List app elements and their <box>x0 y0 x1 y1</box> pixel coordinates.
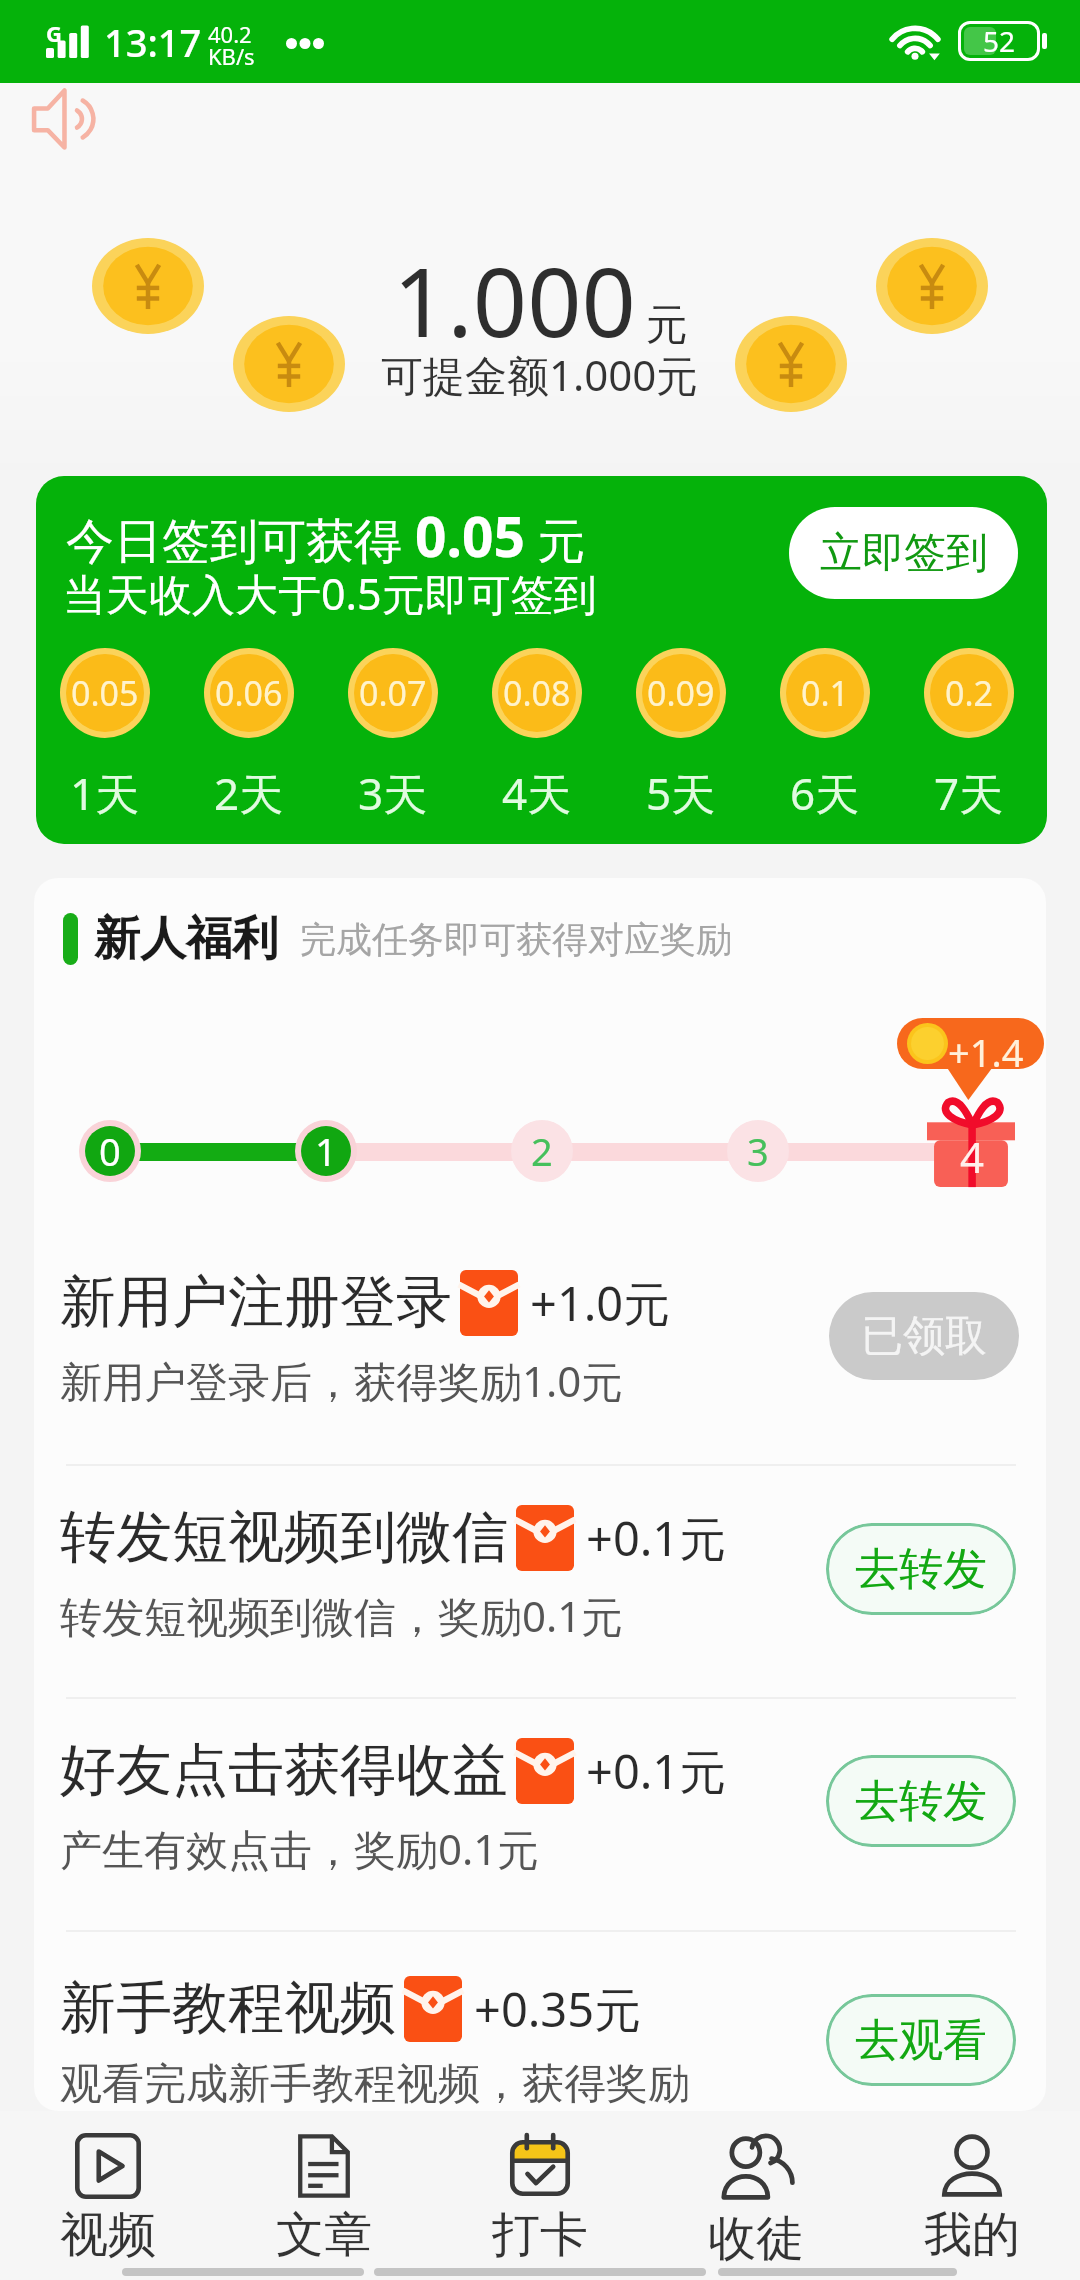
staticText: 0.06 <box>215 670 283 716</box>
button[interactable]: 文章 <box>216 2111 432 2265</box>
staticText: 已领取 <box>861 1310 987 1363</box>
staticText: 6天 <box>790 763 860 823</box>
button[interactable]: 去转发 <box>826 1523 1016 1615</box>
staticText: 转发短视频到微信，奖励0.1元 <box>60 1587 624 1644</box>
staticText: 视频 <box>60 2205 156 2265</box>
staticText: 新手教程视频 <box>60 1973 396 2044</box>
staticText: 文章 <box>276 2205 372 2265</box>
staticText: 0.08 <box>503 670 571 716</box>
staticText: 打卡 <box>492 2205 588 2265</box>
button[interactable]: 我的 <box>864 2111 1080 2265</box>
staticText: +0.1元 <box>586 1739 727 1803</box>
staticText: 0.05 <box>71 670 139 716</box>
staticText: 转发短视频到微信 <box>60 1502 508 1573</box>
staticText: 元 <box>525 507 586 573</box>
staticText: 0.09 <box>647 670 715 716</box>
staticText: 0.1 <box>801 670 850 716</box>
button[interactable]: 已领取 <box>829 1292 1019 1380</box>
staticText: 1天 <box>70 763 140 823</box>
staticText: 3天 <box>358 763 428 823</box>
staticText: 2 <box>531 1125 553 1177</box>
staticText: 1 <box>315 1125 337 1177</box>
staticText: 新用户注册登录 <box>60 1267 452 1338</box>
staticText: 0 <box>99 1125 121 1177</box>
staticText: 立即签到 <box>820 527 988 580</box>
staticText: 当天收入大于0.5元即可签到 <box>63 564 597 623</box>
staticText: 元 <box>646 299 688 352</box>
other: Sound <box>28 88 104 150</box>
staticText: +0.35元 <box>474 1977 642 2041</box>
staticText: 新用户登录后，获得奖励1.0元 <box>60 1352 624 1409</box>
staticText: 2天 <box>214 763 284 823</box>
staticText: 4 <box>960 1128 985 1185</box>
staticText: 0.07 <box>359 670 427 716</box>
button[interactable]: 立即签到 <box>789 507 1018 599</box>
button[interactable]: 去观看 <box>826 1994 1016 2086</box>
staticText: +0.1元 <box>586 1506 727 1570</box>
staticText: G <box>46 18 62 48</box>
button[interactable]: 打卡 <box>432 2111 648 2265</box>
staticText: 产生有效点击，奖励0.1元 <box>60 1820 540 1877</box>
staticText: 去观看 <box>855 2013 987 2068</box>
staticText: 40.2 <box>208 19 252 49</box>
button[interactable]: 收徒 <box>648 2111 864 2269</box>
staticText: 3 <box>747 1125 769 1177</box>
staticText: 52 <box>983 22 1016 60</box>
staticText: 去转发 <box>855 1774 987 1829</box>
staticText: 观看完成新手教程视频，获得奖励 <box>60 2058 690 2111</box>
staticText: +1.4 <box>948 1026 1024 1069</box>
staticText: 0.2 <box>945 670 994 716</box>
staticText: 13:17 <box>104 16 202 68</box>
staticText: 收徒 <box>708 2209 804 2269</box>
staticText: 5天 <box>646 763 716 823</box>
staticText: 0.05 <box>415 498 525 573</box>
staticText: 去转发 <box>855 1542 987 1597</box>
staticText: 今日签到可获得 <box>66 507 415 573</box>
staticText: 7天 <box>934 763 1004 823</box>
staticText: 1.000 <box>393 235 636 364</box>
staticText: 4天 <box>502 763 572 823</box>
button[interactable]: 去转发 <box>826 1755 1016 1847</box>
staticText: KB/s <box>208 41 255 71</box>
staticText: 好友点击获得收益 <box>60 1735 508 1806</box>
button[interactable]: 视频 <box>0 2111 216 2265</box>
staticText: 我的 <box>924 2205 1020 2265</box>
staticText: 新人福利 <box>94 910 278 968</box>
staticText: 完成任务即可获得对应奖励 <box>300 917 732 962</box>
staticText: +1.0元 <box>530 1271 671 1335</box>
staticText: 可提金额1.000元 <box>381 346 699 403</box>
